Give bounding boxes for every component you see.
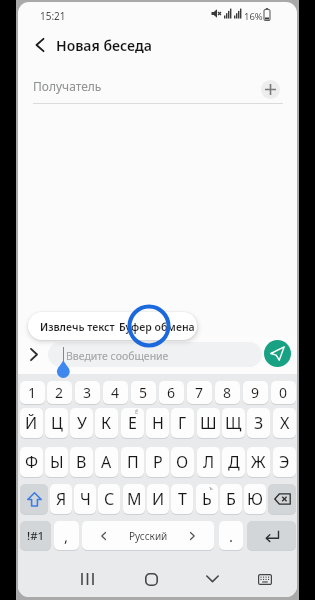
button[interactable]: 6: [159, 381, 184, 404]
staticText: Получатель: [33, 78, 102, 94]
button[interactable]: З: [247, 408, 270, 438]
staticText: А: [101, 451, 112, 473]
button[interactable]: Ш: [197, 408, 220, 438]
button[interactable]: А: [95, 447, 118, 477]
staticText: З: [254, 412, 264, 434]
staticText: Т: [178, 488, 187, 510]
button[interactable]: 1: [20, 381, 45, 404]
button[interactable]: Д: [222, 447, 245, 477]
staticText: П: [127, 451, 139, 473]
button[interactable]: Извлечь текст: [28, 312, 112, 340]
staticText: Ч: [80, 488, 91, 510]
staticText: Е: [128, 412, 137, 434]
button[interactable]: Ь: [196, 484, 218, 514]
staticText: ъ: [209, 484, 213, 492]
button[interactable]: [24, 344, 44, 364]
button[interactable]: [20, 484, 48, 514]
button[interactable]: Э: [273, 447, 296, 477]
staticText: О: [176, 451, 189, 473]
button[interactable]: [138, 568, 164, 590]
staticText: 6: [167, 383, 176, 402]
staticText: Ш: [200, 412, 217, 434]
staticText: 3: [83, 383, 92, 402]
button[interactable]: [268, 484, 296, 514]
button[interactable]: 0: [271, 381, 296, 404]
button[interactable]: Ф: [20, 447, 43, 477]
button[interactable]: [254, 568, 276, 590]
button[interactable]: Русский: [82, 521, 214, 550]
button[interactable]: Л: [197, 447, 220, 477]
staticText: Я: [56, 488, 67, 510]
staticText: Г: [178, 412, 187, 434]
button[interactable]: Е: [121, 408, 144, 438]
staticText: 7: [195, 383, 204, 402]
staticText: 8: [223, 383, 232, 402]
staticText: Н: [152, 412, 164, 434]
button[interactable]: Ч: [74, 484, 96, 514]
button[interactable]: Б: [220, 484, 242, 514]
button[interactable]: !#1: [20, 521, 51, 550]
staticText: Д: [228, 451, 240, 473]
staticText: Ю: [247, 488, 263, 510]
staticText: 15:21: [40, 9, 66, 23]
button[interactable]: У: [70, 408, 93, 438]
staticText: Й: [25, 412, 38, 434]
staticText: Р: [153, 451, 163, 473]
button[interactable]: [247, 521, 296, 550]
staticText: Буфер обмена: [119, 320, 195, 334]
button[interactable]: П: [121, 447, 144, 477]
button[interactable]: Ю: [244, 484, 266, 514]
staticText: С: [104, 488, 115, 510]
button[interactable]: С: [98, 484, 120, 514]
button[interactable]: Ц: [45, 408, 68, 438]
button[interactable]: Р: [146, 447, 169, 477]
button[interactable]: В: [70, 447, 93, 477]
staticText: 5: [139, 383, 148, 402]
button[interactable]: О: [171, 447, 194, 477]
button[interactable]: М: [123, 484, 145, 514]
button[interactable]: К: [95, 408, 118, 438]
staticText: 0: [279, 383, 288, 402]
button[interactable]: [26, 32, 54, 58]
button[interactable]: [264, 340, 291, 367]
button[interactable]: 2: [47, 381, 72, 404]
button[interactable]: Ж: [247, 447, 270, 477]
button[interactable]: Г: [171, 408, 194, 438]
staticText: Ё: [135, 408, 139, 416]
button[interactable]: [74, 568, 100, 590]
staticText: ,: [64, 526, 69, 546]
button[interactable]: Введите сообщение: [48, 342, 262, 367]
button[interactable]: 3: [75, 381, 100, 404]
button[interactable]: Я: [50, 484, 72, 514]
staticText: Русский: [129, 529, 168, 543]
staticText: Э: [279, 451, 290, 473]
staticText: Новая беседа: [56, 36, 152, 55]
staticText: К: [101, 412, 112, 434]
button[interactable]: 4: [103, 381, 128, 404]
button[interactable]: Х: [273, 408, 296, 438]
staticText: 2: [55, 383, 64, 402]
button[interactable]: Щ: [222, 408, 245, 438]
button[interactable]: Буфер обмена: [112, 312, 197, 340]
button[interactable]: 7: [187, 381, 212, 404]
button[interactable]: И: [147, 484, 169, 514]
staticText: Извлечь текст: [40, 320, 115, 334]
button[interactable]: Т: [171, 484, 193, 514]
button[interactable]: 5: [131, 381, 156, 404]
staticText: Ы: [50, 451, 64, 473]
button[interactable]: 9: [243, 381, 268, 404]
button[interactable]: ,: [54, 521, 79, 550]
staticText: М: [127, 488, 142, 510]
staticText: У: [77, 412, 87, 434]
button[interactable]: [261, 80, 280, 99]
staticText: В: [76, 451, 87, 473]
button[interactable]: [199, 568, 225, 590]
button[interactable]: 8: [215, 381, 240, 404]
staticText: !#1: [27, 528, 45, 544]
button[interactable]: Й: [20, 408, 43, 438]
button[interactable]: Н: [146, 408, 169, 438]
staticText: 9: [251, 383, 260, 402]
button[interactable]: Ы: [45, 447, 68, 477]
staticText: Б: [226, 488, 236, 510]
button[interactable]: .: [219, 521, 243, 550]
